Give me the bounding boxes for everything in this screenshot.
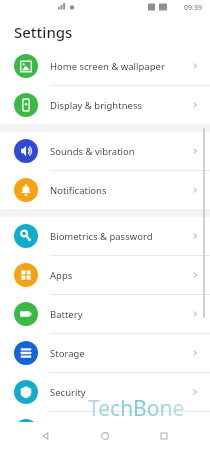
button[interactable]: Biometrics & password [0, 217, 210, 255]
staticText: Display & brightness [50, 99, 190, 112]
button[interactable]: Sounds & vibration [0, 132, 210, 170]
staticText: TechBone [88, 394, 185, 423]
button[interactable]: Battery [0, 295, 210, 333]
staticText: Security [50, 386, 190, 399]
staticText: Battery [50, 308, 190, 321]
button[interactable]: Apps [0, 256, 210, 294]
staticText: Settings [14, 22, 73, 42]
staticText: Storage [50, 347, 190, 360]
button[interactable]: Notifications [0, 171, 210, 209]
staticText: Sounds & vibration [50, 145, 190, 158]
button[interactable]: Security [0, 373, 210, 411]
button[interactable]: Recents [151, 423, 177, 449]
staticText: Notifications [50, 184, 190, 197]
staticText: Home screen & wallpaper [50, 60, 190, 73]
staticText: Apps [50, 269, 190, 282]
staticText: Privacy [50, 425, 190, 438]
button[interactable]: Home [92, 423, 118, 449]
button[interactable]: Display & brightness [0, 86, 210, 124]
staticText: Biometrics & password [50, 230, 190, 243]
button[interactable]: Back [33, 423, 59, 449]
button[interactable]: Storage [0, 334, 210, 372]
button[interactable]: Home screen & wallpaper [0, 47, 210, 85]
staticText: 09:39 [184, 3, 202, 13]
button[interactable]: Privacy [0, 412, 210, 450]
